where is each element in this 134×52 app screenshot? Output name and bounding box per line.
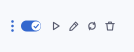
button[interactable]: Play [47,15,65,37]
button[interactable]: Delete [101,15,119,37]
button[interactable]: Sync [83,15,101,37]
button[interactable]: Edit [65,15,83,37]
button[interactable]: Enabled [20,15,42,37]
button[interactable]: More options [5,15,19,37]
